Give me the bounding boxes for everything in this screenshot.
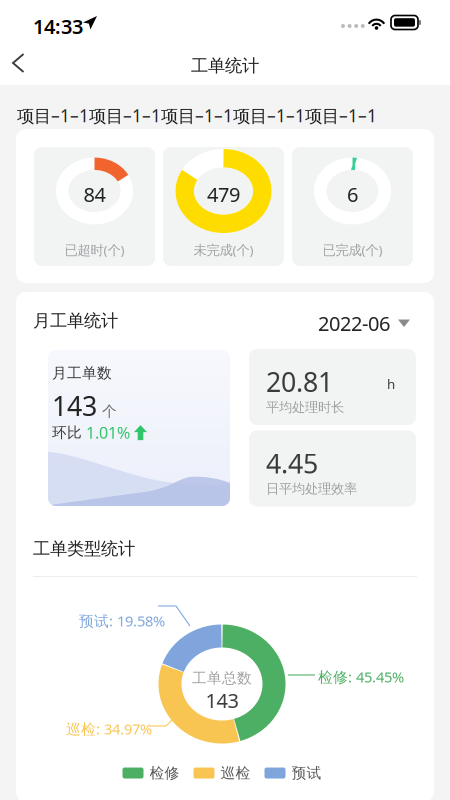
staticText: 已超时(个) <box>64 241 124 259</box>
button[interactable]: 返回 <box>3 41 47 85</box>
button[interactable]: 2022-06 <box>318 310 410 337</box>
staticText: 6 <box>347 181 358 208</box>
staticText: 工单统计 <box>191 55 259 76</box>
staticText: 1.01% <box>86 422 130 443</box>
staticText: 84 <box>83 181 105 208</box>
staticText: 143 <box>205 687 238 714</box>
staticText: 平均处理时长 <box>266 399 344 415</box>
staticText: 479 <box>207 181 240 208</box>
staticText: 检修: 45.45% <box>318 667 404 686</box>
staticText: 日平均处理效率 <box>266 480 357 497</box>
staticText: 项目–1–1项目–1–1项目–1–1项目–1–1项目–1–1 <box>17 104 377 127</box>
staticText: 14:33 <box>33 13 83 40</box>
staticText: 巡检 <box>220 764 250 782</box>
staticText: 预试: 19.58% <box>79 611 165 630</box>
staticText: 未完成(个) <box>193 241 253 259</box>
staticText: 工单总数 <box>192 669 252 687</box>
staticText: 143 <box>52 388 97 423</box>
staticText: 已完成(个) <box>322 241 382 259</box>
staticText: 预试 <box>291 764 321 782</box>
staticText: 个 <box>102 402 117 420</box>
staticText: 月工单数 <box>52 364 112 382</box>
staticText: 巡检: 34.97% <box>66 719 152 738</box>
staticText: 2022-06 <box>318 310 390 337</box>
staticText: h <box>387 375 395 393</box>
staticText: 20.81 <box>266 364 333 399</box>
staticText: 月工单统计 <box>33 310 118 331</box>
staticText: 检修 <box>149 764 179 782</box>
staticText: 4.45 <box>266 445 318 481</box>
staticText: 环比 <box>52 424 82 442</box>
staticText: 工单类型统计 <box>33 538 135 559</box>
